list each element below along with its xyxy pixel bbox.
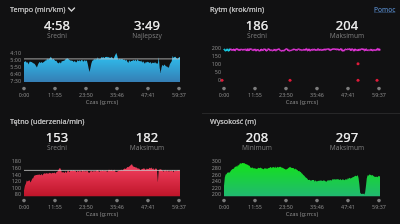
- staticText: Maksimum: [297, 31, 397, 40]
- staticText: 47:41: [333, 203, 363, 210]
- staticText: Tempo (min/km): [10, 4, 66, 14]
- button[interactable]: Wysokość (m): [206, 115, 257, 127]
- staticText: 153: [7, 128, 107, 146]
- staticText: Maksimum: [97, 143, 197, 152]
- staticText: 23:50: [71, 91, 101, 98]
- staticText: Pomoc: [374, 5, 396, 14]
- staticText: 0:00: [209, 203, 239, 210]
- staticText: 35:46: [102, 203, 132, 210]
- staticText: 11:55: [40, 91, 70, 98]
- staticText: Minimum: [207, 143, 307, 152]
- staticText: 0: [202, 76, 221, 83]
- staticText: 240: [202, 177, 221, 184]
- staticText: 59:37: [164, 203, 194, 210]
- staticText: 280: [202, 164, 221, 171]
- staticText: 11:55: [240, 203, 270, 210]
- staticText: 150: [202, 52, 221, 59]
- staticText: 300: [202, 157, 221, 164]
- staticText: 6:40: [2, 70, 21, 77]
- staticText: Średni: [7, 31, 107, 40]
- button[interactable]: Tempo (min/km): [6, 3, 75, 15]
- staticText: 0:00: [9, 91, 39, 98]
- staticText: 11:55: [40, 203, 70, 210]
- staticText: 200: [202, 44, 221, 51]
- staticText: 35:46: [102, 91, 132, 98]
- staticText: Czas (g:m:s): [52, 210, 152, 218]
- staticText: Czas (g:m:s): [252, 98, 352, 106]
- staticText: 0:00: [209, 91, 239, 98]
- staticText: 59:37: [164, 91, 194, 98]
- staticText: Czas (g:m:s): [252, 210, 352, 218]
- staticText: 5:50: [2, 63, 21, 70]
- staticText: 100: [202, 60, 221, 67]
- staticText: 80: [2, 190, 21, 197]
- staticText: 5:00: [2, 56, 21, 63]
- staticText: 208: [207, 128, 307, 146]
- staticText: Średni: [7, 143, 107, 152]
- staticText: 59:37: [364, 91, 394, 98]
- staticText: Czas (g:m:s): [52, 98, 152, 106]
- staticText: 4:10: [2, 49, 21, 56]
- staticText: 260: [202, 171, 221, 178]
- staticText: 140: [2, 171, 21, 178]
- staticText: 35:46: [302, 91, 332, 98]
- button[interactable]: Tętno (uderzenia/min): [6, 115, 85, 127]
- staticText: 11:55: [240, 91, 270, 98]
- staticText: 0:00: [9, 203, 39, 210]
- staticText: 23:50: [271, 91, 301, 98]
- staticText: 50: [202, 68, 221, 75]
- staticText: 297: [297, 128, 397, 146]
- staticText: Średni: [207, 31, 307, 40]
- staticText: 220: [202, 184, 221, 191]
- staticText: 186: [207, 16, 307, 34]
- staticText: Wysokość (m): [210, 116, 257, 126]
- button[interactable]: Rytm (krok/min): [206, 3, 265, 15]
- staticText: 180: [2, 157, 21, 164]
- staticText: 182: [97, 128, 197, 146]
- staticText: 23:50: [271, 203, 301, 210]
- staticText: 4:58: [7, 16, 107, 34]
- staticText: Najlepszy: [97, 31, 197, 40]
- staticText: Rytm (krok/min): [210, 4, 265, 14]
- staticText: 59:37: [364, 203, 394, 210]
- staticText: Maksimum: [297, 143, 397, 152]
- staticText: 200: [202, 190, 221, 197]
- staticText: Tętno (uderzenia/min): [10, 116, 85, 126]
- staticText: 47:41: [133, 203, 163, 210]
- staticText: 7:30: [2, 77, 21, 84]
- staticText: 100: [2, 184, 21, 191]
- staticText: 160: [2, 164, 21, 171]
- staticText: 3:49: [97, 16, 197, 34]
- staticText: 204: [297, 16, 397, 34]
- staticText: 23:50: [71, 203, 101, 210]
- staticText: 47:41: [133, 91, 163, 98]
- staticText: 47:41: [333, 91, 363, 98]
- staticText: 35:46: [302, 203, 332, 210]
- button[interactable]: Pomoc: [370, 3, 396, 15]
- staticText: 120: [2, 177, 21, 184]
